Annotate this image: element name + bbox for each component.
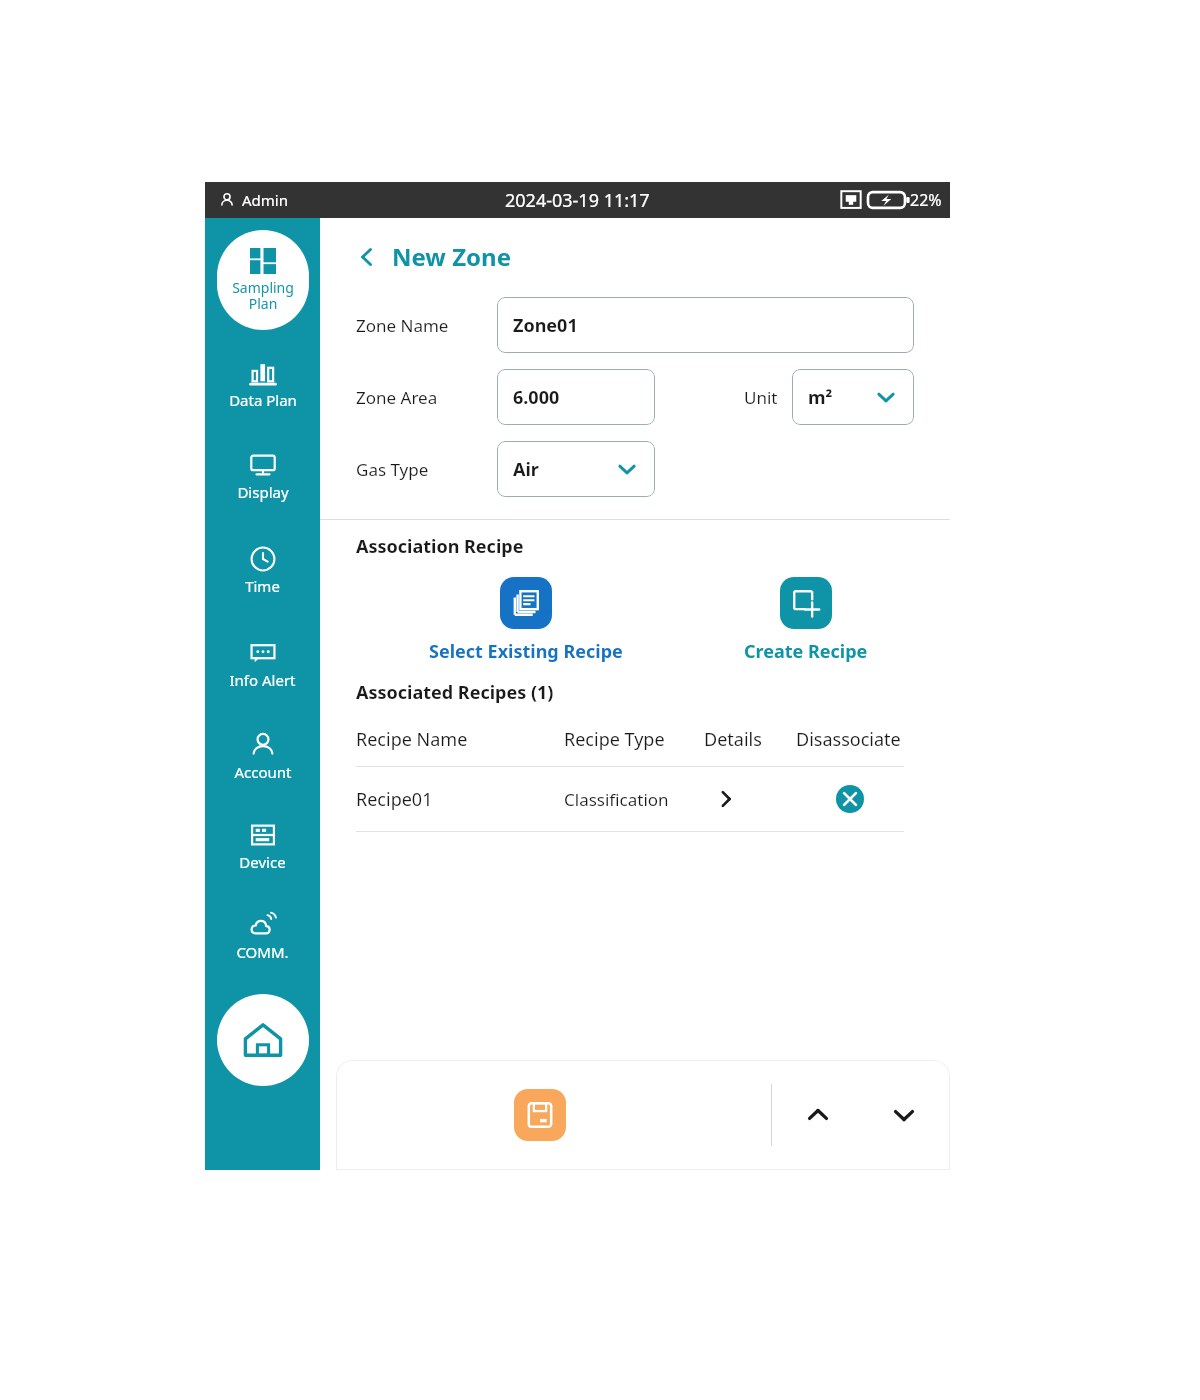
staticText: 22% — [910, 189, 942, 211]
staticText: Admin — [242, 190, 288, 210]
staticText: Sampling Plan — [232, 278, 294, 313]
button[interactable]: Zone01 — [497, 297, 914, 353]
button[interactable]: Device — [205, 822, 320, 872]
button[interactable]: Details — [704, 767, 796, 831]
button[interactable]: Account — [205, 732, 320, 782]
button[interactable]: Home — [217, 994, 309, 1086]
staticText: Time — [245, 576, 280, 596]
staticText: Select Existing Recipe — [429, 639, 623, 664]
staticText: Air — [513, 457, 539, 482]
button[interactable]: 6.000 — [497, 369, 655, 425]
staticText: Zone01 — [513, 313, 578, 338]
button[interactable]: m² — [792, 369, 914, 425]
button[interactable]: Select Existing Recipe — [429, 577, 623, 664]
staticText: Recipe01 — [356, 787, 564, 812]
staticText: Device — [239, 852, 286, 872]
button[interactable]: Info Alert — [205, 640, 320, 690]
button[interactable]: Disassociate — [796, 767, 904, 831]
button[interactable]: Scroll up — [792, 1089, 844, 1141]
staticText: 2024-03-19 11:17 — [505, 188, 650, 213]
button[interactable]: Create Recipe — [744, 577, 868, 664]
staticText: Association Recipe — [356, 534, 524, 559]
staticText: Classification — [564, 788, 704, 811]
button[interactable]: New Zone — [356, 240, 511, 273]
button[interactable]: Scroll down — [878, 1089, 930, 1141]
button[interactable]: Sampling Plan — [217, 230, 309, 330]
button[interactable]: Time — [205, 546, 320, 596]
staticText: New Zone — [392, 240, 511, 273]
staticText: Disassociate — [796, 727, 901, 752]
staticText: Unit — [744, 386, 778, 409]
staticText: m² — [808, 385, 833, 410]
staticText: Display — [237, 482, 289, 502]
staticText: Info Alert — [229, 670, 296, 690]
staticText: Recipe Name — [356, 727, 564, 752]
staticText: Associated Recipes (1) — [356, 680, 554, 705]
button[interactable]: Display — [205, 452, 320, 502]
button[interactable]: Data Plan — [205, 360, 320, 410]
staticText: Recipe Type — [564, 727, 704, 752]
staticText: 6.000 — [513, 385, 560, 410]
staticText: Zone Area — [356, 386, 471, 409]
button[interactable]: COMM. — [205, 912, 320, 962]
button[interactable]: Save — [514, 1089, 566, 1141]
staticText: Details — [704, 727, 796, 752]
staticText: Data Plan — [229, 390, 297, 410]
staticText: Create Recipe — [744, 639, 868, 664]
button[interactable]: Air — [497, 441, 655, 497]
staticText: Gas Type — [356, 458, 471, 481]
staticText: Zone Name — [356, 314, 471, 337]
staticText: Account — [234, 762, 292, 782]
staticText: COMM. — [236, 942, 289, 962]
